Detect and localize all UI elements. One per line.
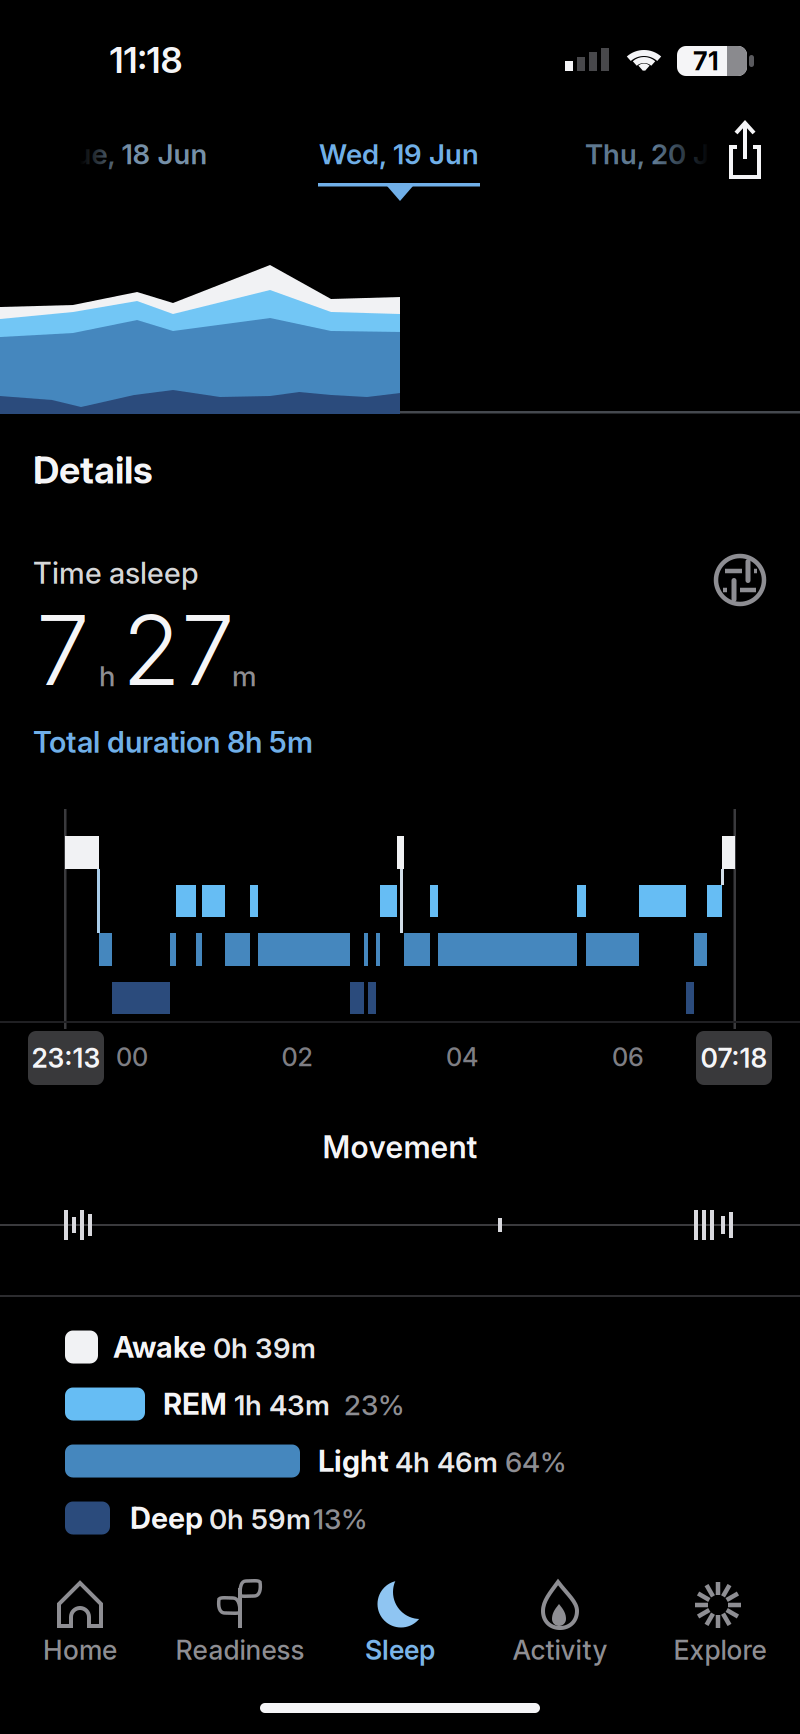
staticText: 0h 39m xyxy=(213,1331,316,1364)
staticText: 27 xyxy=(122,593,235,707)
staticText: Tue, 18 Jun xyxy=(58,137,207,170)
staticText: Sleep xyxy=(365,1634,435,1666)
button[interactable]: Wed, 19 Jun xyxy=(294,121,504,187)
staticText: 71 xyxy=(693,46,719,76)
staticText: h xyxy=(99,659,115,692)
staticText: Total duration 8h 5m xyxy=(33,725,313,759)
staticText: Details xyxy=(33,448,153,492)
staticText: Home xyxy=(43,1634,117,1666)
staticText: 02 xyxy=(281,1042,312,1072)
staticText: Activity xyxy=(512,1634,607,1666)
staticText: 7 xyxy=(36,593,90,707)
staticText: 00 xyxy=(116,1042,148,1072)
staticText: Light xyxy=(318,1444,389,1478)
staticText: 13% xyxy=(313,1502,368,1535)
staticText: REM xyxy=(163,1387,227,1421)
button[interactable]: Tue, 18 Jun xyxy=(28,121,238,187)
button[interactable]: Readiness xyxy=(160,1578,320,1688)
staticText: 23:13 xyxy=(31,1042,100,1074)
staticText: 04 xyxy=(446,1042,478,1072)
button[interactable]: Explore xyxy=(640,1578,800,1688)
button[interactable]: Sleep details settings xyxy=(707,547,773,613)
staticText: 07:18 xyxy=(700,1042,767,1074)
staticText: 23% xyxy=(344,1388,405,1421)
staticText: Wed, 19 Jun xyxy=(319,137,479,170)
staticText: Explore xyxy=(673,1634,766,1666)
staticText: 4h 46m xyxy=(395,1445,498,1478)
staticText: Thu, 20 Jun xyxy=(585,137,743,170)
staticText: 64% xyxy=(505,1445,567,1478)
staticText: 11:18 xyxy=(109,39,182,81)
staticText: Deep xyxy=(130,1501,203,1535)
staticText: Readiness xyxy=(175,1634,304,1666)
staticText: 06 xyxy=(612,1042,644,1072)
staticText: Time asleep xyxy=(33,556,199,590)
button[interactable]: Share xyxy=(692,122,798,184)
button[interactable]: Home xyxy=(0,1578,160,1688)
staticText: Movement xyxy=(322,1129,477,1165)
staticText: Awake xyxy=(113,1330,206,1364)
staticText: 1h 43m xyxy=(234,1388,330,1421)
staticText: 0h 59m xyxy=(209,1502,311,1535)
button[interactable]: Sleep xyxy=(320,1578,480,1688)
staticText: m xyxy=(232,659,257,692)
button[interactable]: Thu, 20 Jun xyxy=(559,121,769,187)
button[interactable]: Activity xyxy=(480,1578,640,1688)
